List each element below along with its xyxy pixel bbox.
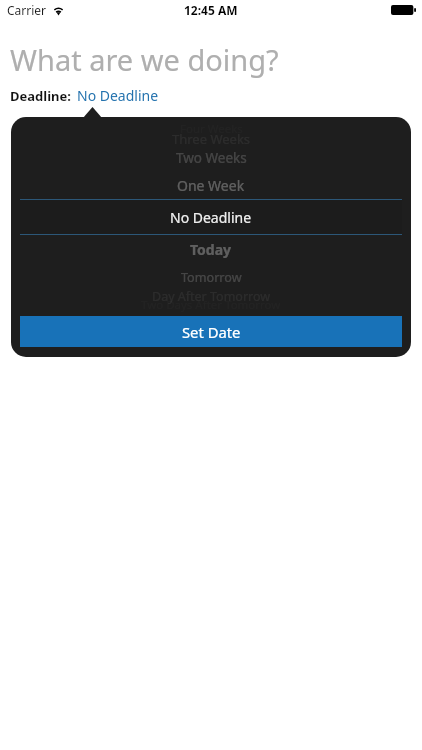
staticText: Three Weeks bbox=[172, 130, 251, 148]
staticText: Two Weeks bbox=[176, 149, 247, 167]
button[interactable]: No Deadline bbox=[77, 86, 159, 105]
button[interactable]: Today bbox=[11, 238, 411, 260]
staticText: Tomorrow bbox=[181, 269, 242, 286]
button[interactable]: Two Weeks bbox=[11, 147, 411, 169]
staticText: One Week bbox=[177, 176, 245, 195]
staticText: Deadline: bbox=[10, 87, 71, 105]
other: Wifi signal bbox=[52, 4, 65, 15]
staticText: 12:45 AM bbox=[184, 2, 238, 18]
staticText: No Deadline bbox=[77, 86, 159, 105]
button[interactable]: Set Date bbox=[20, 316, 402, 347]
button[interactable]: One Week bbox=[11, 174, 411, 196]
staticText: Carrier bbox=[7, 2, 47, 18]
button[interactable]: Four Weeks bbox=[11, 118, 411, 140]
other: Battery full bbox=[391, 5, 416, 15]
staticText: Set Date bbox=[182, 322, 241, 342]
staticText: Two Days After Tomorrow bbox=[141, 297, 281, 313]
button[interactable]: Tomorrow bbox=[11, 266, 411, 288]
staticText: Day After Tomorrow bbox=[152, 288, 271, 305]
staticText: Today bbox=[190, 240, 232, 259]
staticText: No Deadline bbox=[170, 208, 252, 227]
button[interactable]: No Deadline bbox=[11, 206, 411, 228]
staticText: What are we doing? bbox=[10, 40, 279, 79]
